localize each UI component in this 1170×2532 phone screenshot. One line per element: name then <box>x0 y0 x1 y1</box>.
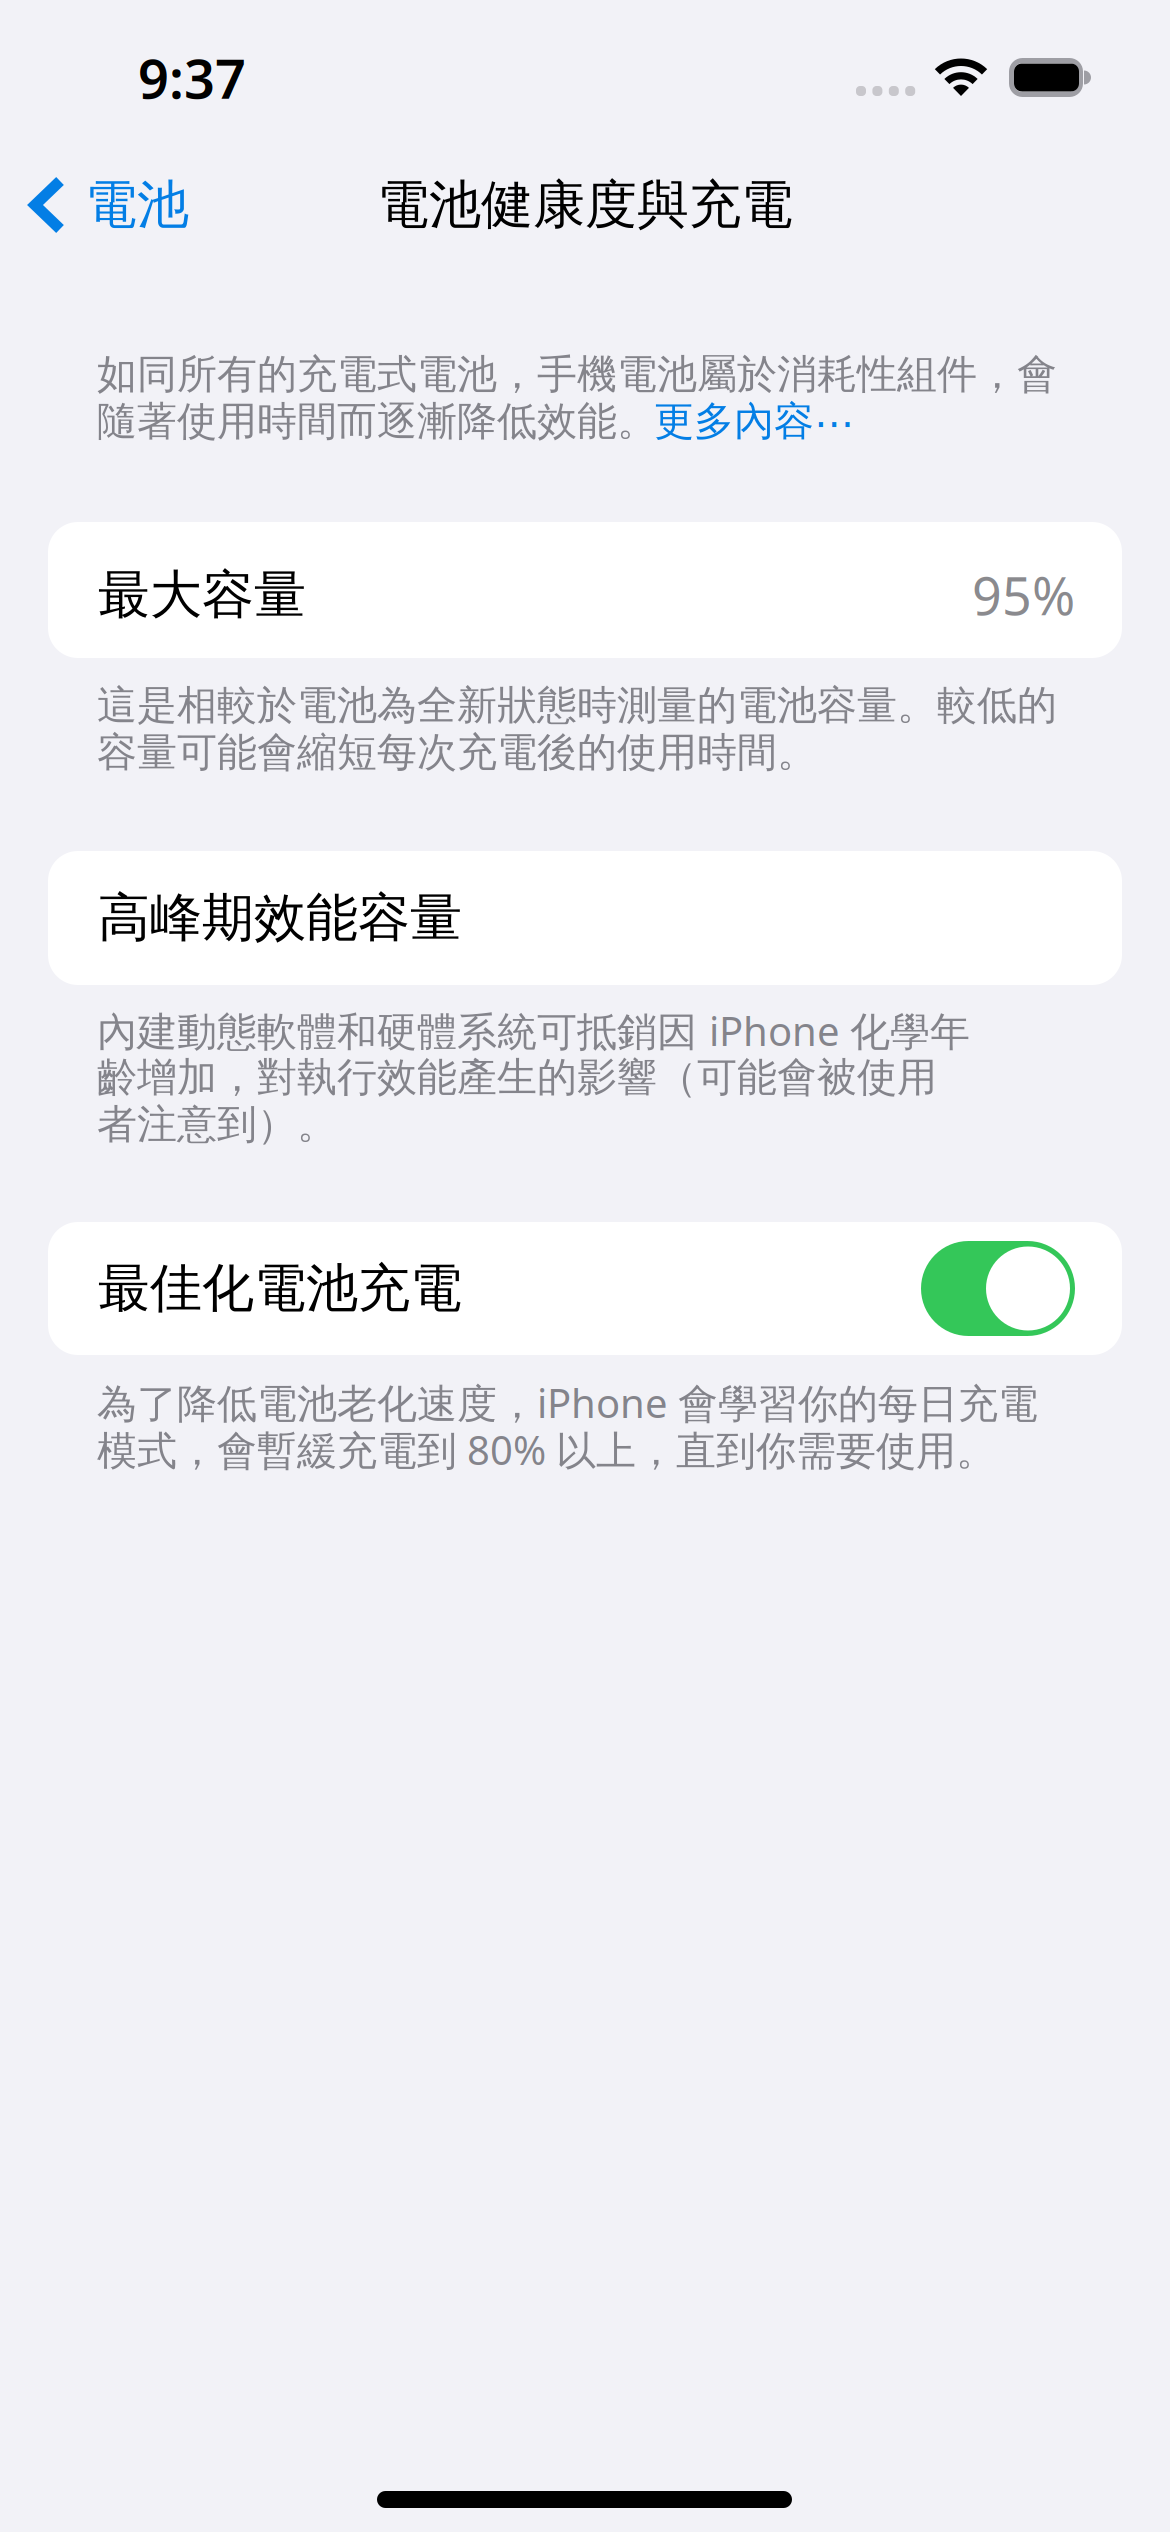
staticText: 這是相較於電池為全新狀態時測量的電池容量。較低的 <box>97 680 1057 731</box>
button[interactable]: 最佳化電池充電 <box>48 1222 1122 1355</box>
staticText: 9:37 <box>138 41 246 114</box>
staticText: 齡增加，對執行效能產生的影響（可能會被使用 <box>97 1052 937 1103</box>
button[interactable]: 高峰期效能容量 <box>48 851 1122 985</box>
staticText: 最佳化電池充電 <box>98 1256 462 1321</box>
staticText: 電池健康度與充電 <box>377 172 793 238</box>
button[interactable]: 更多內容⋯ <box>654 398 860 445</box>
button[interactable]: 最大容量 <box>48 522 1122 658</box>
staticText: 隨著使用時間而逐漸降低效能。 <box>97 396 657 447</box>
staticText: 為了降低電池老化速度，iPhone 會學習你的每日充電 <box>97 1375 1038 1430</box>
staticText: 95% <box>972 560 1075 630</box>
button[interactable]: 電池 <box>0 152 213 258</box>
staticText: 高峰期效能容量 <box>98 885 462 951</box>
staticText: 更多內容⋯ <box>654 396 854 447</box>
staticText: 電池 <box>85 172 189 238</box>
staticText: 內建動態軟體和硬體系統可抵銷因 iPhone 化學年 <box>97 1003 970 1058</box>
staticText: 如同所有的充電式電池，手機電池屬於消耗性組件，會 <box>97 349 1057 400</box>
staticText: 者注意到）。 <box>97 1099 337 1150</box>
staticText: 容量可能會縮短每次充電後的使用時間。 <box>97 727 817 778</box>
staticText: 模式，會暫緩充電到 80% 以上，直到你需要使用。 <box>97 1422 996 1477</box>
staticText: 最大容量 <box>98 562 306 628</box>
